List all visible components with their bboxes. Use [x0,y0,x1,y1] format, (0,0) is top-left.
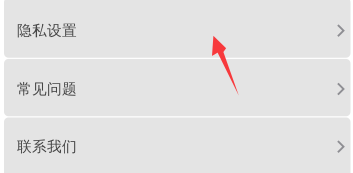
button[interactable]: 隐私设置 [4,0,350,58]
staticText: 隐私设置 [17,22,77,40]
staticText: 联系我们 [17,138,77,156]
button[interactable]: 常见问题 [4,59,350,116]
staticText: 常见问题 [17,80,77,98]
button[interactable]: 联系我们 [4,117,350,173]
